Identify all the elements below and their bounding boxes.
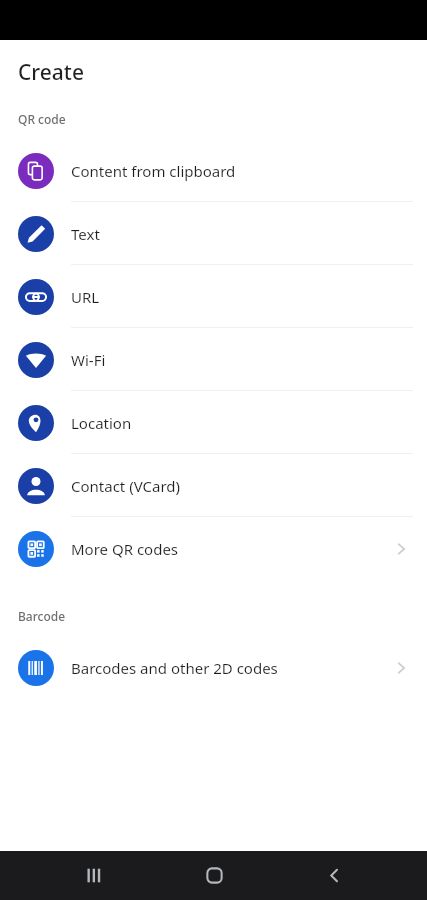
button[interactable]: Contact (VCard) <box>0 454 427 517</box>
button[interactable]: More QR codes <box>0 517 427 580</box>
staticText: Barcode <box>18 608 66 624</box>
staticText: Location <box>71 413 132 433</box>
button[interactable]: Recents <box>65 851 121 900</box>
staticText: QR code <box>18 111 66 127</box>
staticText: Wi-Fi <box>71 350 106 370</box>
button[interactable]: Barcodes and other 2D codes <box>0 636 427 699</box>
staticText: URL <box>71 287 100 307</box>
staticText: Create <box>18 58 84 87</box>
staticText: Contact (VCard) <box>71 476 181 496</box>
staticText: Barcodes and other 2D codes <box>71 658 278 678</box>
staticText: Text <box>71 224 100 244</box>
button[interactable]: Back <box>306 851 362 900</box>
button[interactable]: Text <box>0 202 427 265</box>
button[interactable]: URL <box>0 265 427 328</box>
button[interactable]: Content from clipboard <box>0 139 427 202</box>
button[interactable]: Location <box>0 391 427 454</box>
button[interactable]: Home <box>186 851 242 900</box>
staticText: More QR codes <box>71 539 179 559</box>
staticText: Content from clipboard <box>71 161 236 181</box>
button[interactable]: Wi-Fi <box>0 328 427 391</box>
